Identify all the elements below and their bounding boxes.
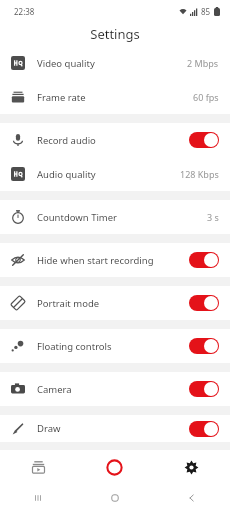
button[interactable]: Toggle on <box>189 132 219 148</box>
staticText: 128 Kbps <box>180 168 219 180</box>
staticText: 22:38 <box>14 6 35 17</box>
staticText: 3 s <box>207 211 219 223</box>
button[interactable]: Camera <box>0 372 230 406</box>
staticText: Record audio <box>37 134 189 147</box>
staticText: Hide when start recording <box>37 254 189 267</box>
staticText: 2 Mbps <box>187 57 219 69</box>
button[interactable]: Frame rate <box>0 80 230 114</box>
button[interactable]: Portrait mode <box>0 286 230 320</box>
staticText: 85 <box>201 6 211 17</box>
button[interactable]: Record <box>76 450 153 484</box>
button[interactable]: Hide when start recording <box>0 243 230 277</box>
staticText: Countdown Timer <box>37 211 207 224</box>
button[interactable]: Videos <box>0 450 76 484</box>
button[interactable]: Toggle on <box>189 252 219 268</box>
button[interactable]: Record audio <box>0 123 230 157</box>
button[interactable]: Draw <box>0 415 230 442</box>
button[interactable]: Recents <box>0 484 76 512</box>
staticText: Camera <box>37 383 189 396</box>
button[interactable]: Audio quality <box>0 157 230 191</box>
button[interactable]: Toggle on <box>189 338 219 354</box>
button[interactable]: Toggle on <box>189 421 219 437</box>
button[interactable]: Back <box>153 484 230 512</box>
staticText: Draw <box>37 422 189 435</box>
button[interactable]: Floating controls <box>0 329 230 363</box>
button[interactable]: Countdown Timer <box>0 200 230 234</box>
button[interactable]: Video quality <box>0 46 230 80</box>
button[interactable]: Settings <box>153 450 230 484</box>
staticText: Audio quality <box>37 168 180 181</box>
staticText: Settings <box>90 25 140 43</box>
staticText: 60 fps <box>193 91 219 103</box>
staticText: Portrait mode <box>37 297 189 310</box>
staticText: Frame rate <box>37 91 193 104</box>
staticText: Video quality <box>37 57 187 70</box>
button[interactable]: Home <box>76 484 153 512</box>
staticText: Floating controls <box>37 340 189 353</box>
button[interactable]: Toggle on <box>189 295 219 311</box>
button[interactable]: Toggle on <box>189 381 219 397</box>
